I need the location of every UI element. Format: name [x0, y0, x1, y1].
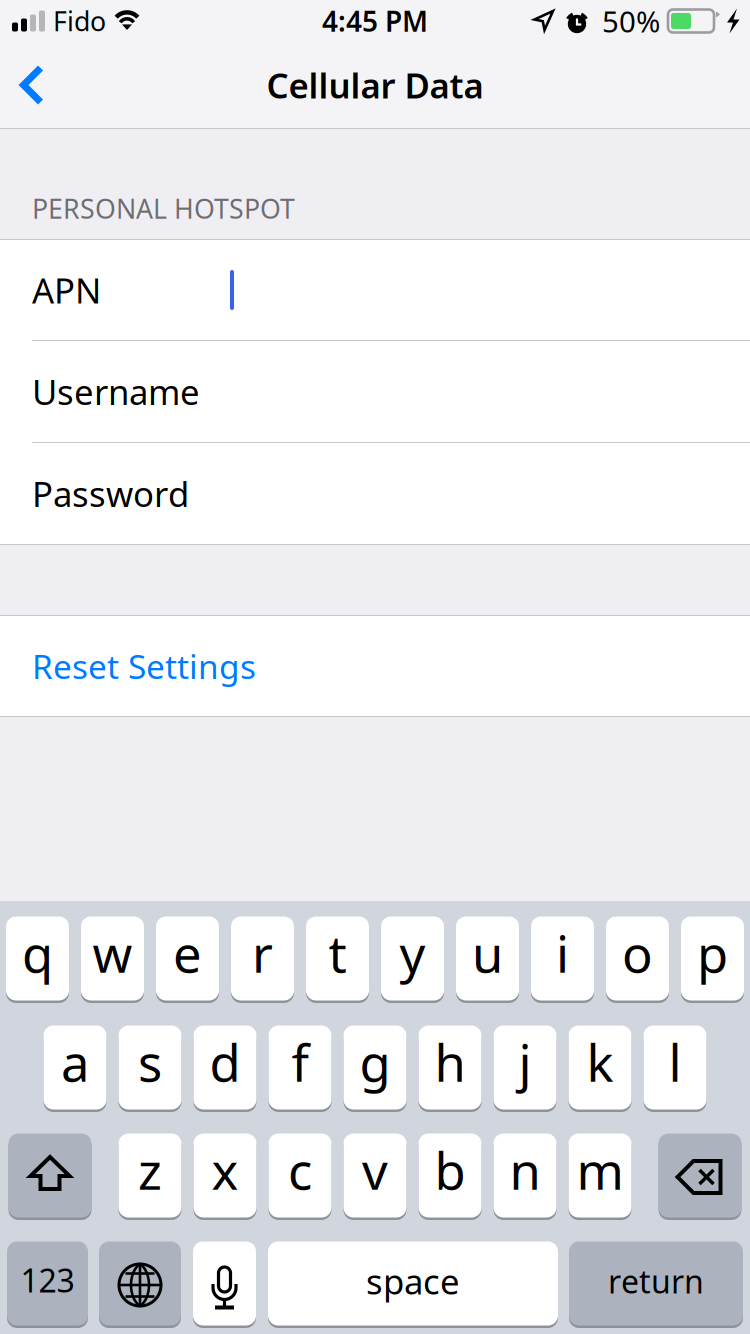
staticText: x — [211, 1136, 238, 1204]
staticText: e — [173, 919, 202, 987]
staticText: p — [697, 919, 728, 987]
button[interactable]: j — [493, 1025, 556, 1112]
button[interactable]: o — [606, 916, 669, 1003]
staticText: v — [362, 1136, 388, 1204]
staticText: r — [252, 919, 273, 987]
button[interactable]: space — [268, 1241, 558, 1328]
staticText: Password — [32, 470, 189, 516]
staticText: PERSONAL HOTSPOT — [32, 191, 295, 226]
button[interactable]: f — [268, 1025, 331, 1112]
button[interactable]: w — [81, 916, 144, 1003]
button[interactable]: Next keyboard — [99, 1241, 181, 1328]
button[interactable]: 123 — [7, 1241, 88, 1328]
staticText: 123 — [20, 1259, 74, 1301]
button[interactable]: l — [643, 1025, 706, 1112]
staticText: APN — [32, 267, 101, 313]
staticText: b — [434, 1136, 465, 1204]
staticText: s — [138, 1028, 162, 1096]
staticText: i — [556, 919, 569, 987]
staticText: return — [608, 1260, 704, 1302]
button[interactable]: n — [493, 1133, 556, 1220]
staticText: t — [328, 919, 346, 987]
button[interactable]: Dictation — [193, 1241, 256, 1328]
staticText: a — [61, 1028, 89, 1096]
button[interactable]: k — [568, 1025, 631, 1112]
staticText: j — [518, 1028, 531, 1096]
button[interactable]: Password — [0, 443, 750, 544]
button[interactable]: Username — [0, 341, 750, 442]
staticText: c — [288, 1136, 312, 1204]
staticText: y — [399, 919, 425, 987]
button[interactable]: u — [456, 916, 519, 1003]
button[interactable]: g — [343, 1025, 406, 1112]
button[interactable]: r — [231, 916, 294, 1003]
staticText: d — [209, 1028, 240, 1096]
button[interactable]: return — [569, 1241, 743, 1328]
button[interactable]: x — [193, 1133, 256, 1220]
button[interactable]: APN — [0, 240, 750, 340]
staticText: k — [586, 1028, 613, 1096]
button[interactable]: b — [418, 1133, 481, 1220]
staticText: h — [434, 1028, 465, 1096]
button[interactable]: Back — [1, 42, 63, 128]
button[interactable]: i — [531, 916, 594, 1003]
button[interactable]: m — [568, 1133, 631, 1220]
button[interactable]: d — [193, 1025, 256, 1112]
button[interactable]: e — [156, 916, 219, 1003]
button[interactable]: q — [6, 916, 69, 1003]
staticText: Fido — [53, 3, 106, 39]
button[interactable]: Delete — [658, 1133, 741, 1220]
button[interactable]: Shift — [8, 1133, 91, 1220]
button[interactable]: p — [681, 916, 744, 1003]
button[interactable]: s — [118, 1025, 181, 1112]
staticText: u — [472, 919, 503, 987]
staticText: z — [138, 1136, 162, 1204]
button[interactable]: z — [118, 1133, 181, 1220]
button[interactable]: c — [268, 1133, 331, 1220]
button[interactable]: v — [343, 1133, 406, 1220]
button[interactable]: h — [418, 1025, 481, 1112]
staticText: n — [509, 1136, 540, 1204]
staticText: o — [622, 919, 653, 987]
staticText: Cellular Data — [266, 62, 483, 108]
staticText: 50% — [602, 1, 660, 40]
staticText: l — [668, 1028, 681, 1096]
staticText: 4:45 PM — [322, 2, 428, 40]
button[interactable]: y — [381, 916, 444, 1003]
button[interactable]: Reset Settings — [0, 616, 750, 716]
button[interactable]: a — [43, 1025, 106, 1112]
staticText: space — [366, 1258, 460, 1304]
staticText: Username — [32, 368, 200, 414]
staticText: g — [359, 1028, 390, 1096]
staticText: f — [291, 1028, 308, 1096]
staticText: q — [22, 919, 53, 987]
staticText: w — [92, 919, 132, 987]
staticText: m — [576, 1136, 623, 1204]
staticText: Reset Settings — [32, 644, 256, 688]
button[interactable]: t — [306, 916, 369, 1003]
